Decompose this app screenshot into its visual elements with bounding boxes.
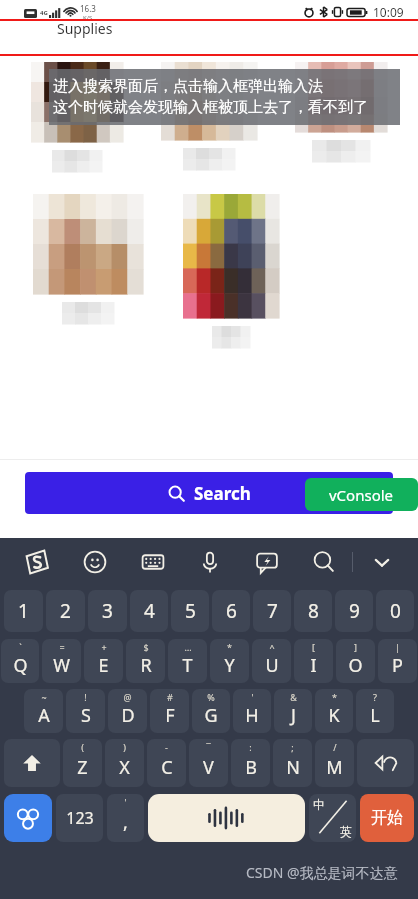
button[interactable]: ; [273,739,312,787]
staticText: vConsole [329,485,394,505]
button[interactable]: ! [66,689,105,733]
button[interactable] [24,62,130,172]
button[interactable]: 123 [56,794,103,842]
staticText: S [81,703,91,728]
button[interactable]: % [192,689,230,733]
staticText: … [184,641,192,653]
staticText: ~ [41,691,47,703]
button[interactable]: 2 [46,590,85,632]
button[interactable]: Voice input [181,538,238,586]
button[interactable]: Emoji [66,538,124,586]
button[interactable] [288,62,394,162]
staticText: 9 [349,598,360,624]
staticText: % [207,691,215,703]
button[interactable]: 9 [335,590,373,632]
staticText: 中 [313,797,325,812]
staticText: W [53,653,70,678]
staticText: ' [251,691,254,703]
button[interactable]: Backspace [357,739,414,787]
staticText: 4 [144,598,155,624]
button[interactable]: ? [356,689,394,733]
staticText: B [245,755,257,780]
button[interactable]: - [147,739,186,787]
staticText: CSDN @我总是词不达意 [246,863,398,882]
staticText: R [140,653,152,678]
staticText: K [328,703,340,728]
button[interactable]: * [210,639,249,683]
staticText: * [227,641,232,653]
button[interactable]: 8 [294,590,332,632]
staticText: 2 [60,598,71,624]
button[interactable]: Space [148,794,305,842]
staticText: I [310,653,317,678]
button[interactable]: @ [108,689,147,733]
button[interactable]: ~ [24,689,63,733]
button[interactable]: 3 [88,590,127,632]
staticText: ( [81,741,84,753]
staticText: ) [123,741,126,753]
button[interactable]: Search [25,472,393,514]
staticText: 10:09 [373,4,404,20]
staticText: $ [143,641,149,653]
staticText: A [38,703,50,728]
button[interactable]: # [150,689,189,733]
button[interactable] [154,62,264,170]
staticText: 1 [18,598,29,624]
button[interactable]: + [84,639,123,683]
staticText: / [333,741,337,753]
staticText: P [392,653,403,678]
staticText: U [265,653,279,678]
button[interactable]: vConsole [305,478,418,511]
staticText: D [121,703,135,728]
staticText: * [332,691,337,703]
button[interactable]: & [274,689,312,733]
button[interactable]: Keyboard layout [124,538,181,586]
button[interactable]: Sogou input method [8,538,66,586]
staticText: T [182,653,193,678]
staticText: ] [354,641,357,653]
button[interactable]: [ [294,639,333,683]
button[interactable]: ` [1,639,39,683]
button[interactable]: ) [105,739,144,787]
button[interactable]: 5 [171,590,209,632]
button[interactable]: ‾ [189,739,228,787]
staticText: O [348,653,363,678]
button[interactable]: Hide keyboard [353,538,410,586]
button[interactable]: Search [295,538,352,586]
staticText: 7 [267,598,278,624]
button[interactable]: Input options [4,794,52,842]
staticText: # [167,691,173,703]
button[interactable]: ' [233,689,271,733]
button[interactable]: | [378,639,417,683]
button[interactable]: ] [336,639,375,683]
button[interactable]: : [231,739,270,787]
button[interactable] [176,194,286,348]
button[interactable]: 0 [376,590,414,632]
button[interactable]: $ [126,639,165,683]
staticText: ! [84,691,87,703]
button[interactable]: ' [107,794,144,842]
button[interactable]: ( [63,739,102,787]
staticText: 6 [226,598,237,624]
staticText: ' [124,796,127,808]
button[interactable]: = [42,639,81,683]
button[interactable]: / [315,739,354,787]
staticText: + [101,641,107,653]
button[interactable]: * [315,689,353,733]
staticText: F [165,703,175,728]
button[interactable]: Quick phrases [238,538,295,586]
button[interactable]: 开始 [360,794,414,842]
button[interactable]: 4 [130,590,168,632]
staticText: ; [291,741,294,753]
staticText: L [370,703,380,728]
button[interactable]: Shift [4,739,60,787]
button[interactable]: … [168,639,207,683]
button[interactable]: 6 [212,590,250,632]
staticText: 这个时候就会发现输入框被顶上去了，看不到了 [53,98,368,117]
button[interactable]: Chinese English toggle [309,794,356,842]
button[interactable] [26,194,150,324]
button[interactable]: 1 [4,590,43,632]
button[interactable]: ^ [252,639,291,683]
button[interactable]: 7 [253,590,291,632]
staticText: = [59,641,65,653]
